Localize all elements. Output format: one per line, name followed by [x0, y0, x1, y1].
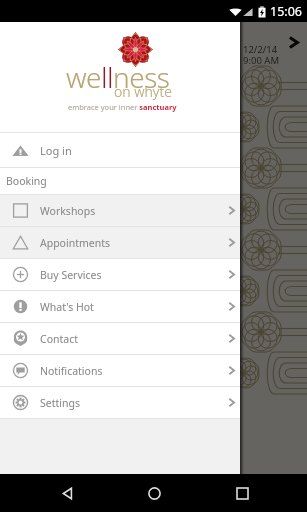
button[interactable]: Home: [139, 474, 169, 512]
button[interactable]: What's Hot: [0, 291, 240, 322]
staticText: Settings: [40, 396, 80, 410]
button[interactable]: Settings: [0, 387, 240, 418]
staticText: Booking: [6, 174, 47, 188]
button[interactable]: Log in: [0, 133, 240, 167]
staticText: on whyte: [114, 82, 172, 101]
staticText: Workshops: [40, 204, 96, 218]
staticText: Log in: [40, 143, 72, 158]
staticText: wellness: [66, 58, 170, 96]
button[interactable]: Appointments: [0, 227, 240, 258]
button[interactable]: Buy Services: [0, 259, 240, 290]
staticText: 15:06: [270, 3, 302, 20]
staticText: Contact: [40, 332, 78, 346]
button[interactable]: Notifications: [0, 355, 240, 386]
button[interactable]: Contact: [0, 323, 240, 354]
staticText: Notifications: [40, 364, 103, 378]
staticText: What's Hot: [40, 300, 94, 314]
staticText: Buy Services: [40, 268, 102, 282]
button[interactable]: Recents: [227, 474, 257, 512]
button[interactable]: Back: [52, 474, 82, 512]
staticText: 9:00 AM: [243, 54, 280, 67]
staticText: embrace your inner sanctuary: [68, 102, 177, 112]
staticText: 12/2/14: [243, 43, 278, 56]
button[interactable]: Workshops: [0, 195, 240, 226]
staticText: Appointments: [40, 236, 111, 250]
